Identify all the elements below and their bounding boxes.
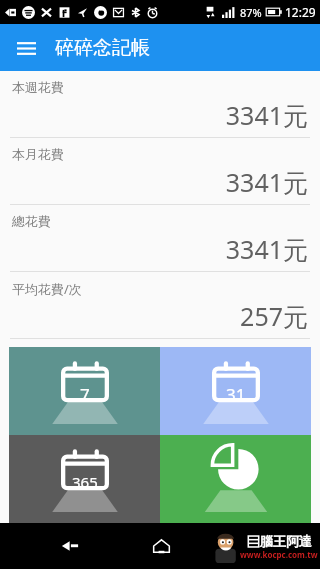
staticText: 3341元 (225, 232, 308, 266)
button[interactable]: 總花費 (0, 205, 320, 272)
staticText: 腦王阿達 (260, 533, 312, 549)
staticText: 3341元 (225, 165, 308, 199)
staticText: 365 (72, 472, 98, 492)
staticText: 7 (80, 383, 90, 406)
staticText: 本週花費 (12, 79, 64, 95)
button[interactable]: 本週花費 (0, 71, 320, 138)
button[interactable]: 平均花費/次 (0, 272, 320, 339)
button[interactable]: 本月花費 (0, 138, 320, 205)
staticText: 本月花費 (12, 146, 64, 162)
button[interactable]: Open navigation drawer (6, 28, 46, 68)
staticText: 總花費 (12, 213, 51, 229)
staticText: www.kocpc.com.tw (240, 549, 318, 560)
staticText: 257元 (240, 299, 308, 333)
button[interactable]: Yearly summary (9, 435, 160, 523)
button[interactable]: Back (52, 528, 88, 564)
staticText: 12:29 (285, 4, 316, 20)
button[interactable]: Weekly summary (9, 347, 160, 435)
staticText: 87% (240, 5, 262, 20)
staticText: 平均花費/次 (12, 280, 82, 298)
staticText: 碎碎念記帳 (55, 36, 150, 60)
button[interactable]: Home (143, 528, 179, 564)
button[interactable]: Monthly summary (160, 347, 311, 435)
button[interactable]: Chart (160, 435, 311, 523)
staticText: 3341元 (225, 98, 308, 132)
staticText: 31 (226, 383, 246, 406)
